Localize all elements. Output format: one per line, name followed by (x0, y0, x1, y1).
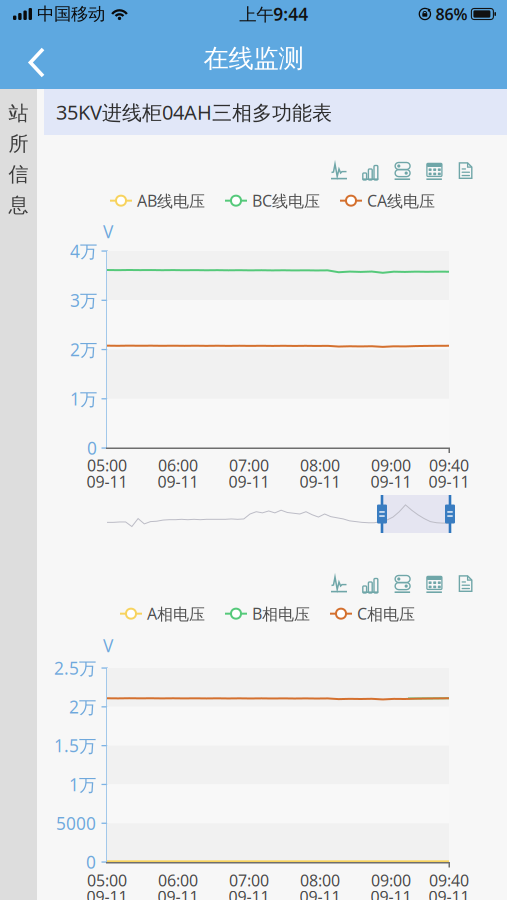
staticText: 5000 (56, 812, 96, 835)
button[interactable]: C相电压 (330, 603, 415, 624)
staticText: 09:40 (429, 455, 469, 476)
staticText: 05:00 (87, 870, 127, 891)
staticText: 09-11 (428, 886, 469, 900)
staticText: 息 (8, 193, 28, 217)
staticText: 2.5万 (54, 656, 96, 679)
staticText: 3万 (70, 289, 97, 312)
staticText: 09-11 (157, 471, 198, 492)
staticText: 09-11 (299, 886, 340, 900)
button[interactable]: Data table (426, 162, 442, 180)
button[interactable]: B相电压 (225, 603, 310, 624)
button[interactable]: AB线电压 (110, 190, 205, 211)
staticText: 35KV进线柜04AH三相多功能表 (56, 99, 332, 125)
button[interactable]: Line chart (331, 575, 347, 593)
staticText: 07:00 (229, 455, 269, 476)
staticText: 09-11 (228, 886, 269, 900)
staticText: V (103, 634, 113, 657)
staticText: 信 (8, 162, 28, 187)
staticText: 09-11 (157, 886, 198, 900)
staticText: 中国移动 (37, 3, 105, 25)
button[interactable]: Back (0, 28, 61, 89)
staticText: C相电压 (357, 603, 415, 624)
staticText: 1.5万 (54, 734, 96, 757)
button[interactable]: Line chart (331, 162, 347, 180)
button[interactable]: 站 (0, 89, 37, 900)
staticText: B相电压 (252, 603, 310, 624)
button[interactable]: Toggle series (395, 575, 411, 593)
staticText: 1万 (70, 387, 97, 410)
button[interactable]: Bar chart (363, 575, 379, 593)
staticText: 09-11 (370, 471, 411, 492)
staticText: 站 (8, 101, 28, 126)
staticText: 1万 (69, 773, 96, 796)
button[interactable]: Time range slider (107, 493, 449, 535)
staticText: AB线电压 (137, 190, 205, 211)
button[interactable]: Data view (458, 162, 474, 180)
staticText: A相电压 (147, 603, 205, 624)
button[interactable]: Bar chart (363, 162, 379, 180)
staticText: 09-11 (428, 471, 469, 492)
button[interactable]: Data view (458, 575, 474, 593)
staticText: 09-11 (228, 471, 269, 492)
staticText: 2万 (69, 695, 96, 718)
staticText: 0 (87, 436, 97, 459)
staticText: 2万 (70, 338, 97, 361)
staticText: 07:00 (229, 870, 269, 891)
staticText: 08:00 (300, 455, 340, 476)
staticText: 上午9:44 (239, 2, 308, 25)
button[interactable]: BC线电压 (225, 190, 320, 211)
staticText: 09-11 (86, 471, 127, 492)
staticText: 09-11 (370, 886, 411, 900)
staticText: 06:00 (158, 455, 198, 476)
button[interactable]: CA线电压 (340, 190, 435, 211)
staticText: BC线电压 (252, 190, 320, 211)
staticText: 09-11 (86, 886, 127, 900)
staticText: 08:00 (300, 870, 340, 891)
staticText: 09:00 (371, 870, 411, 891)
staticText: 0 (86, 850, 96, 873)
staticText: 4万 (70, 239, 97, 262)
staticText: 05:00 (87, 455, 127, 476)
staticText: 09:00 (371, 455, 411, 476)
staticText: 在线监测 (203, 43, 303, 74)
staticText: 09-11 (299, 471, 340, 492)
staticText: 所 (8, 132, 28, 156)
staticText: 09:40 (429, 870, 469, 891)
button[interactable]: Data table (426, 575, 442, 593)
staticText: 06:00 (158, 870, 198, 891)
staticText: 86% (435, 3, 467, 25)
staticText: V (103, 220, 113, 243)
button[interactable]: Toggle series (395, 162, 411, 180)
button[interactable]: A相电压 (120, 603, 205, 624)
staticText: CA线电压 (367, 190, 435, 211)
